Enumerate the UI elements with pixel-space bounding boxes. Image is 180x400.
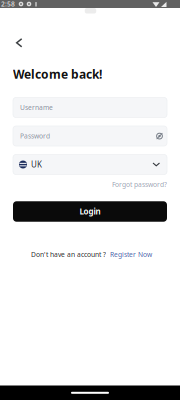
staticText: Username — [20, 103, 53, 112]
staticText: Register Now — [110, 250, 152, 259]
staticText: 2:58 — [1, 0, 15, 8]
staticText: UK — [31, 159, 42, 170]
button[interactable]: Forgot password? — [112, 180, 167, 189]
button[interactable]: Country UK — [13, 154, 167, 174]
button[interactable]: Show password — [155, 132, 164, 139]
staticText: Login — [79, 206, 100, 217]
staticText: Don't have an account ? — [31, 250, 106, 259]
button[interactable]: Login — [13, 201, 167, 222]
staticText: Welcome back! — [13, 66, 102, 82]
button[interactable]: Register Now — [110, 250, 152, 259]
button[interactable]: Back — [15, 38, 23, 48]
staticText: Forgot password? — [112, 180, 167, 189]
staticText: Password — [20, 132, 50, 140]
